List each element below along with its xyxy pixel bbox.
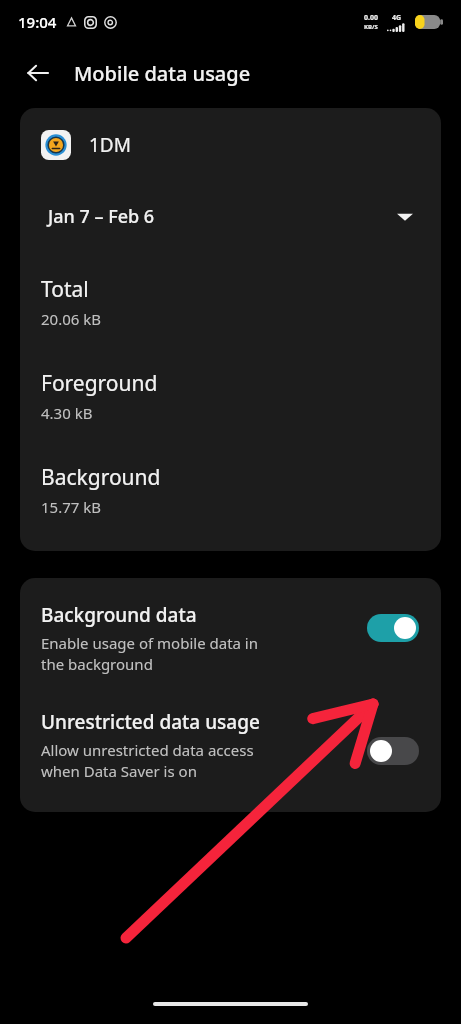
staticText: KB/S [364, 23, 378, 31]
button[interactable]: Jan 7 – Feb 6 [20, 204, 441, 229]
staticText: Foreground [41, 369, 158, 398]
staticText: Jan 7 – Feb 6 [48, 204, 155, 229]
button[interactable]: Back [18, 53, 58, 93]
staticText: Enable usage of mobile data in the backg… [41, 633, 259, 675]
staticText: 20.06 kB [41, 309, 102, 329]
staticText: Unrestricted data usage [41, 709, 260, 735]
button[interactable]: 1DM [20, 128, 441, 162]
staticText: 1DM [89, 132, 131, 158]
button[interactable]: Unrestricted data usage [20, 709, 441, 782]
staticText: 15.77 kB [41, 497, 102, 517]
button[interactable]: Off [367, 737, 419, 765]
staticText: Allow unrestricted data access when Data… [41, 740, 254, 782]
button[interactable]: Background data [20, 578, 441, 675]
staticText: Mobile data usage [74, 60, 251, 87]
button[interactable]: On [367, 614, 419, 642]
staticText: Total [41, 275, 89, 304]
staticText: 0.00 [364, 13, 378, 23]
staticText: 4G [392, 13, 402, 23]
staticText: Background [41, 463, 161, 492]
staticText: 19:04 [18, 12, 57, 32]
staticText: Background data [41, 602, 197, 628]
staticText: 4.30 kB [41, 403, 93, 423]
